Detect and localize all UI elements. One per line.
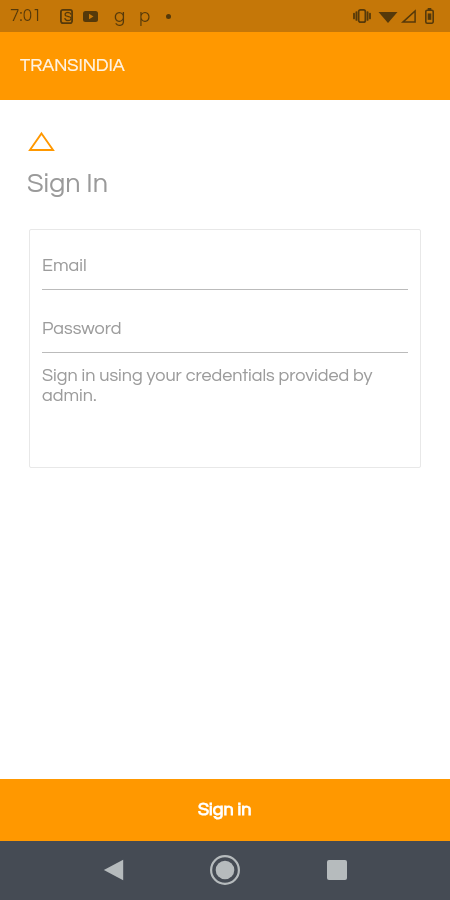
button[interactable]: Back	[89, 846, 137, 894]
staticText: 7:01	[10, 7, 42, 25]
staticText: TRANSINDIA	[20, 56, 125, 75]
button[interactable]: Sign in	[0, 779, 450, 841]
staticText: Sign in using your credentials provided …	[42, 366, 390, 404]
button[interactable]: Home	[201, 846, 249, 894]
staticText: p	[139, 6, 151, 26]
button[interactable]: Recent apps	[313, 846, 361, 894]
staticText: S	[64, 10, 72, 23]
staticText: Password	[42, 319, 122, 338]
staticText: g	[114, 6, 126, 26]
staticText: Sign in	[198, 800, 252, 819]
staticText: Email	[42, 256, 87, 275]
staticText: Sign In	[27, 170, 108, 198]
